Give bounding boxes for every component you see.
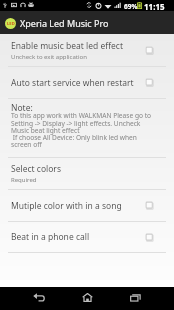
- staticText: 69%: [124, 2, 138, 11]
- staticText: Mutiple color with in a song: [11, 200, 122, 212]
- button[interactable]: Back: [0, 287, 58, 310]
- button[interactable]: Enable music beat led effect: [0, 34, 174, 66]
- other: Checkbox: [145, 201, 154, 210]
- other: Checkbox: [145, 233, 154, 242]
- staticText: To this app work with WALKMAN Please go …: [11, 111, 152, 149]
- button[interactable]: Mutiple color with in a song: [0, 190, 174, 221]
- staticText: 11:15: [144, 1, 165, 12]
- other: Checkbox: [145, 46, 154, 55]
- button[interactable]: Select colors: [0, 158, 174, 189]
- button[interactable]: Recent apps: [116, 287, 174, 310]
- staticText: Note:: [11, 102, 33, 114]
- staticText: Select colors: [11, 163, 61, 175]
- button[interactable]: Auto start service when restart: [0, 67, 174, 98]
- staticText: Xperia Led Music Pro: [20, 17, 109, 29]
- button[interactable]: Home: [58, 287, 116, 310]
- staticText: Auto start service when restart: [11, 77, 134, 89]
- staticText: Uncheck to exit application: [11, 53, 87, 61]
- staticText: Required: [11, 176, 37, 184]
- button[interactable]: Beat in a phone call: [0, 222, 174, 252]
- other: Checkbox: [145, 78, 154, 87]
- staticText: Enable music beat led effect: [11, 40, 124, 52]
- staticText: LED: [7, 21, 15, 27]
- staticText: Beat in a phone call: [11, 231, 90, 243]
